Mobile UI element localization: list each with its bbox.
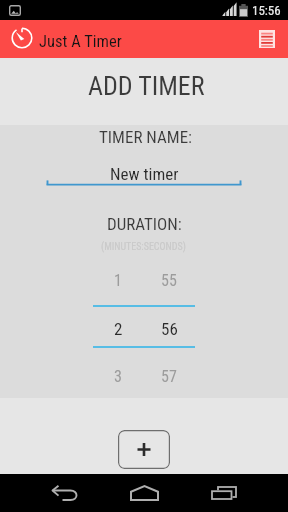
button[interactable]: Timer list	[248, 21, 286, 57]
staticText: (MINUTES:SECONDS)	[101, 241, 186, 253]
staticText: 55	[161, 271, 177, 290]
button[interactable]: Back	[34, 474, 94, 512]
staticText: 57	[161, 367, 177, 386]
staticText: 3	[114, 367, 122, 386]
button[interactable]: Home	[114, 474, 174, 512]
staticText: ADD TIMER	[88, 71, 205, 101]
staticText: DURATION:	[107, 214, 182, 234]
staticText: 2	[114, 319, 123, 339]
staticText: TIMER NAME:	[99, 127, 193, 147]
button[interactable]: Recent apps	[194, 474, 254, 512]
staticText: New timer	[110, 164, 179, 184]
staticText: Just A Timer	[39, 32, 122, 51]
button[interactable]: Add timer	[118, 430, 170, 469]
staticText: 15:56	[252, 3, 281, 18]
staticText: 1	[114, 271, 122, 290]
staticText: 56	[161, 319, 178, 339]
